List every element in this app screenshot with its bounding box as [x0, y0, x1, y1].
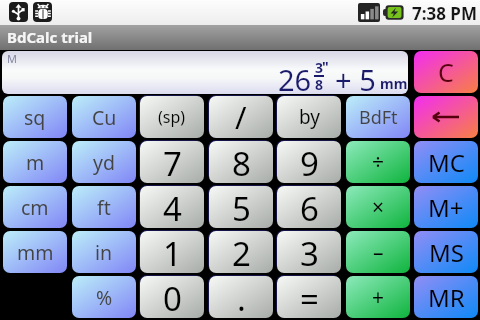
staticText: 1	[163, 231, 182, 273]
button[interactable]: 2	[209, 231, 273, 273]
staticText: cm	[21, 194, 49, 221]
button[interactable]: sq	[3, 96, 67, 138]
staticText: –	[373, 238, 384, 267]
staticText: %	[96, 284, 113, 311]
other: USB debugging	[33, 2, 52, 22]
button[interactable]: 4	[140, 186, 204, 228]
staticText: MR	[428, 281, 465, 314]
button[interactable]: Clear	[414, 51, 478, 93]
button[interactable]: %	[72, 276, 136, 318]
staticText: + 5	[335, 60, 376, 94]
button[interactable]: 6	[277, 186, 341, 228]
staticText: M+	[428, 191, 464, 224]
staticText: 26	[278, 60, 312, 94]
button[interactable]: 9	[277, 141, 341, 183]
staticText: 3	[315, 58, 324, 77]
staticText: 3	[300, 231, 319, 273]
button[interactable]: –	[346, 231, 410, 273]
staticText: Cu	[92, 104, 117, 131]
button[interactable]: /	[209, 96, 273, 138]
other: USB connected	[9, 2, 28, 22]
staticText: ft	[97, 194, 111, 221]
button[interactable]: Cu	[72, 96, 136, 138]
button[interactable]: 1	[140, 231, 204, 273]
button[interactable]: m	[3, 141, 67, 183]
button[interactable]: by	[277, 96, 341, 138]
button[interactable]: mm	[3, 231, 67, 273]
staticText: 7:38 PM	[412, 2, 477, 25]
staticText: .	[237, 276, 246, 318]
button[interactable]: BdFt	[346, 96, 410, 138]
button[interactable]: +	[346, 276, 410, 318]
button[interactable]: MR	[414, 276, 478, 318]
staticText: 5	[232, 186, 251, 228]
staticText: mm	[380, 74, 408, 93]
staticText: 0	[163, 276, 182, 318]
button[interactable]: 5	[209, 186, 273, 228]
staticText: yd	[93, 149, 115, 176]
staticText: BdCalc trial	[7, 27, 93, 47]
staticText: MS	[429, 236, 464, 269]
staticText: mm	[17, 239, 54, 266]
button[interactable]: ÷	[346, 141, 410, 183]
staticText: by	[299, 104, 320, 130]
button[interactable]: (sp)	[140, 96, 204, 138]
staticText: MC	[428, 146, 465, 179]
button[interactable]: yd	[72, 141, 136, 183]
staticText: 7	[163, 141, 182, 183]
staticText: C	[438, 55, 454, 89]
staticText: sq	[24, 104, 46, 131]
staticText: 2	[232, 231, 251, 273]
button[interactable]: cm	[3, 186, 67, 228]
staticText: in	[95, 239, 113, 266]
button[interactable]: ft	[72, 186, 136, 228]
button[interactable]: 8	[209, 141, 273, 183]
staticText: 6	[300, 186, 319, 228]
button[interactable]: =	[277, 276, 341, 318]
button[interactable]: Backspace	[414, 96, 478, 138]
staticText: m	[26, 149, 45, 176]
staticText: 8	[315, 75, 324, 94]
staticText: 9	[300, 141, 319, 183]
button[interactable]: .	[209, 276, 273, 318]
button[interactable]: MS	[414, 231, 478, 273]
staticText: /	[235, 96, 247, 138]
button[interactable]: 0	[140, 276, 204, 318]
button[interactable]: MC	[414, 141, 478, 183]
staticText: ÷	[372, 148, 385, 177]
staticText: 8	[232, 141, 251, 183]
staticText: ×	[372, 193, 385, 222]
button[interactable]: ×	[346, 186, 410, 228]
staticText: "	[322, 57, 329, 76]
button[interactable]: 3	[277, 231, 341, 273]
staticText: M	[7, 51, 17, 66]
staticText: +	[372, 283, 385, 312]
staticText: BdFt	[359, 105, 398, 130]
staticText: 4	[163, 186, 182, 228]
staticText: =	[300, 276, 319, 318]
button[interactable]: 7	[140, 141, 204, 183]
button[interactable]: M+	[414, 186, 478, 228]
button[interactable]: in	[72, 231, 136, 273]
staticText: (sp)	[158, 106, 186, 128]
